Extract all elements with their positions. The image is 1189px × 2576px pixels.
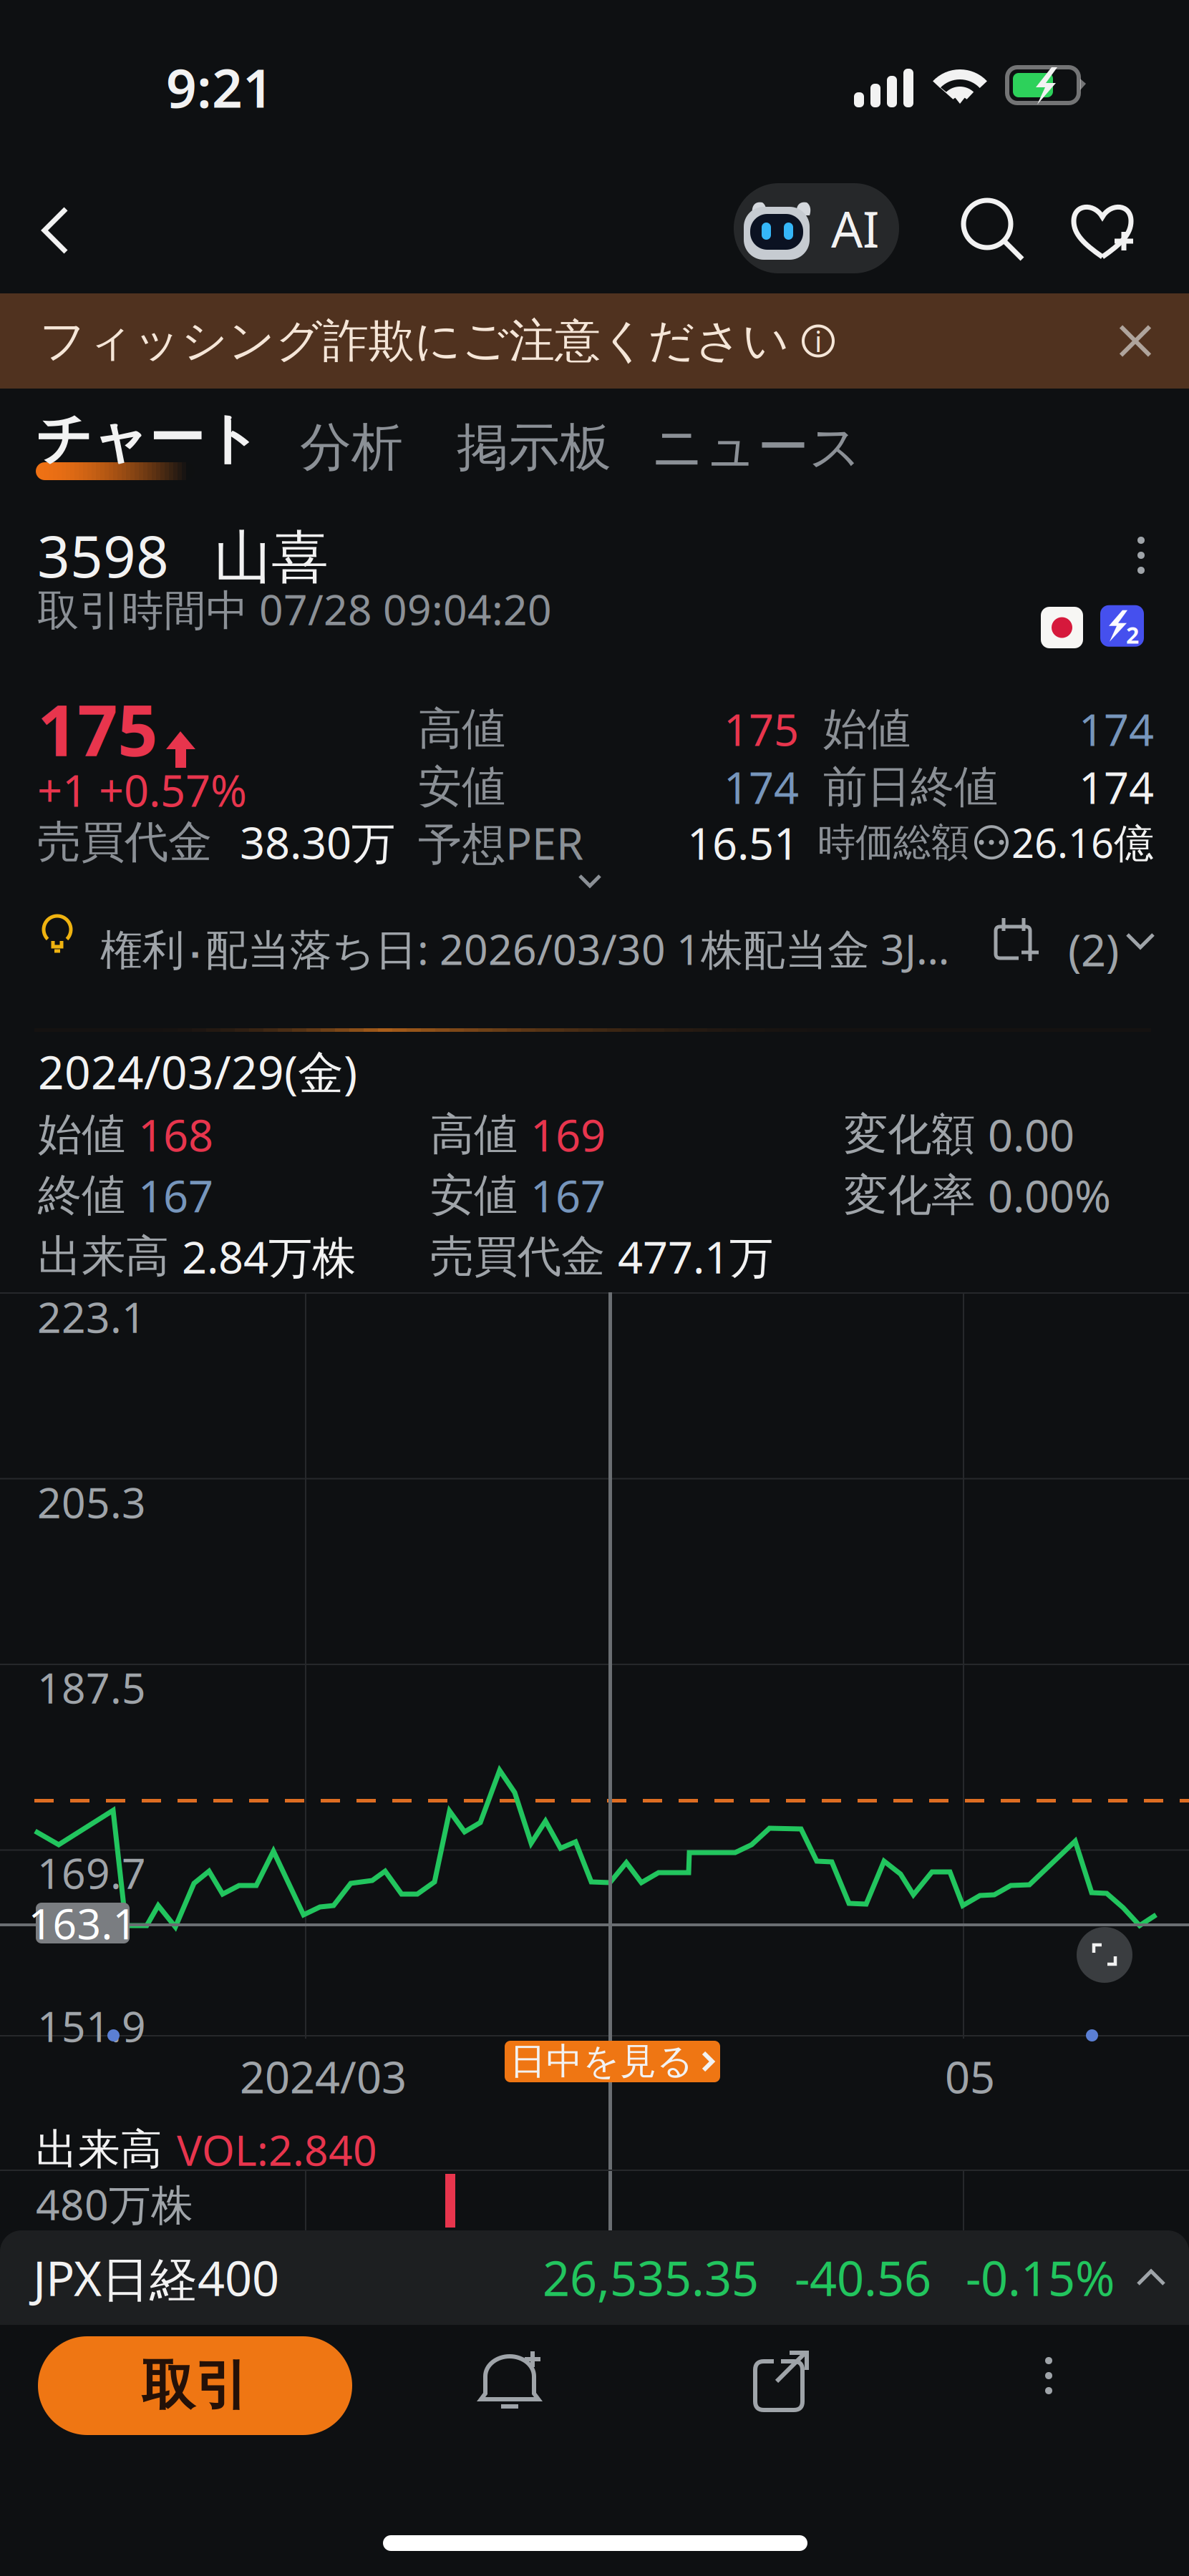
staticText: チャート	[36, 405, 261, 473]
staticText: 時価総額	[817, 819, 969, 866]
button[interactable]: Search	[964, 200, 1025, 262]
staticText: 前日終値	[823, 760, 998, 814]
staticText: 26.16億	[1011, 816, 1154, 869]
button[interactable]: More	[1125, 527, 1158, 583]
staticText: 174	[1079, 758, 1154, 816]
staticText: 変化額	[844, 1108, 975, 1161]
staticText: 権利･配当落ち日: 2026/03/30 1株配当金 3JPY…	[100, 920, 966, 977]
staticText: 0.00%	[988, 1166, 1111, 1224]
button[interactable]: チャート	[0, 411, 251, 480]
staticText: 175	[724, 700, 799, 758]
staticText: 480万株	[36, 2176, 193, 2232]
staticText: 38.30万	[240, 813, 395, 871]
staticText: 取引時間中 07/28 09:04:20	[37, 581, 552, 637]
staticText: 掲示板	[457, 416, 611, 479]
staticText: 151.9	[37, 1998, 146, 2054]
staticText: 16.51	[687, 814, 799, 872]
staticText: 始値	[38, 1108, 125, 1161]
staticText: 167	[530, 1166, 606, 1224]
staticText: 187.5	[37, 1659, 146, 1715]
staticText: 取引	[141, 2353, 249, 2418]
staticText: 始値	[823, 702, 911, 756]
button[interactable]: AI assistant	[734, 183, 899, 273]
staticText: 出来高	[36, 2124, 162, 2175]
staticText: (2)	[1068, 920, 1119, 978]
button[interactable]: Fullscreen chart	[1077, 1927, 1132, 1983]
staticText: 高値	[418, 702, 505, 756]
staticText: 26,535.35	[543, 2246, 759, 2309]
button[interactable]: More options	[0, 2336, 1072, 2404]
staticText: 223.1	[37, 1289, 146, 1344]
staticText: 2024/03/29(金)	[38, 1041, 357, 1102]
staticText: 分析	[300, 416, 403, 479]
staticText: 9:21	[166, 52, 273, 123]
staticText: 終値	[38, 1168, 125, 1222]
button[interactable]: フィッシング詐欺にご注意ください	[0, 293, 1189, 389]
staticText: 売買代金	[430, 1230, 605, 1283]
button[interactable]: 掲示板	[0, 411, 611, 498]
staticText: i	[815, 322, 822, 360]
staticText: 高値	[430, 1108, 518, 1161]
staticText: -40.56	[795, 2246, 931, 2309]
button[interactable]: 取引	[0, 2336, 352, 2435]
staticText: 予想PER	[418, 814, 583, 872]
staticText: 0.00	[988, 1105, 1074, 1164]
button[interactable]: Add to watchlist	[1068, 199, 1137, 262]
staticText: 174	[724, 758, 799, 816]
staticText: 167	[138, 1166, 213, 1224]
staticText: AI	[831, 195, 880, 261]
staticText: 168	[138, 1105, 213, 1164]
staticText: JPX日経400	[33, 2246, 279, 2309]
staticText: フィッシング詐欺にご注意ください	[39, 313, 790, 369]
staticText: 変化率	[844, 1168, 975, 1222]
button[interactable]: Back	[34, 199, 76, 262]
staticText: 売買代金	[37, 815, 212, 869]
button[interactable]: JPX日経400	[0, 2230, 1189, 2325]
staticText: 3598 山喜	[37, 517, 329, 593]
staticText: 205.3	[37, 1474, 146, 1530]
button[interactable]: Expand details	[573, 867, 608, 896]
staticText: VOL:2.840	[177, 2122, 377, 2177]
button[interactable]: 日中を見る	[0, 2036, 720, 2082]
button[interactable]: Share	[0, 2336, 812, 2415]
staticText: 安値	[430, 1168, 518, 1222]
button[interactable]: Price alert	[0, 2336, 544, 2411]
staticText: 169	[530, 1105, 606, 1164]
staticText: -0.15%	[966, 2246, 1115, 2309]
button[interactable]: 権利･配当落ち日: 2026/03/30 1株配当金 3JPY…	[0, 909, 1189, 973]
button[interactable]: ニュース	[0, 411, 862, 498]
staticText: 174	[1079, 700, 1154, 758]
staticText: 05	[945, 2047, 995, 2105]
staticText: 2	[1126, 620, 1139, 650]
staticText: +1 +0.57%	[37, 761, 247, 819]
staticText: 安値	[418, 760, 505, 814]
staticText: 2.84万株	[182, 1227, 356, 1286]
staticText: 日中を見る	[510, 2039, 694, 2084]
staticText: 2024/03	[240, 2047, 407, 2105]
staticText: 169.7	[37, 1845, 146, 1900]
staticText: 477.1万	[618, 1227, 773, 1286]
button[interactable]: 分析	[0, 411, 403, 498]
staticText: 出来高	[38, 1230, 169, 1283]
staticText: ニュース	[651, 416, 862, 479]
staticText: 163.1	[28, 1895, 137, 1951]
staticText: 175	[37, 682, 157, 776]
